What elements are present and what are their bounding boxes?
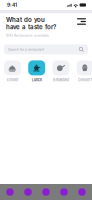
button[interactable]: Search for a restaurant [4,44,88,54]
staticText: Lunch [32,78,42,82]
staticText: Dessert [78,78,92,82]
button[interactable]: Saved [55,184,73,200]
staticText: What do you [6,16,45,23]
button[interactable]: Profile [73,184,91,200]
button[interactable]: Breakfast [52,60,69,82]
button[interactable]: Lunch [28,60,45,82]
button[interactable]: Dinner [4,60,21,82]
staticText: 9:41 [7,2,17,8]
staticText: 1243 Restaurants available [6,34,49,37]
staticText: Breakfast [53,78,69,82]
button[interactable]: Home [1,184,19,200]
staticText: Dinner [7,78,18,82]
staticText: have a taste for? [6,23,56,31]
staticText: Search for a restaurant [8,47,44,51]
button[interactable]: Menu [77,16,86,25]
button[interactable]: Dessert [77,60,92,82]
button[interactable]: Explore [19,184,37,200]
button[interactable]: Orders [37,184,55,200]
